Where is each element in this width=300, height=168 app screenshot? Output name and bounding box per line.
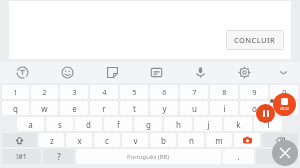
button[interactable]: Settings bbox=[222, 62, 266, 83]
staticText: 3 bbox=[72, 87, 77, 97]
staticText: a bbox=[28, 119, 33, 130]
button[interactable]: Expand toolbar bbox=[266, 62, 300, 83]
button[interactable]: 7 bbox=[180, 85, 208, 99]
button[interactable]: d bbox=[75, 117, 102, 131]
staticText: 8 bbox=[222, 87, 227, 97]
button[interactable]: j bbox=[194, 117, 222, 131]
button[interactable]: 1 bbox=[2, 85, 29, 99]
staticText: i bbox=[223, 103, 226, 114]
button[interactable]: 6 bbox=[150, 85, 178, 99]
button[interactable]: p bbox=[270, 101, 298, 115]
button[interactable]: c bbox=[94, 133, 120, 147]
button[interactable]: Backspace bbox=[262, 133, 298, 147]
button[interactable]: Close bbox=[272, 140, 298, 166]
button[interactable]: h bbox=[164, 117, 192, 131]
button[interactable]: v bbox=[122, 133, 148, 147]
button[interactable]: s bbox=[46, 117, 73, 131]
button[interactable]: f bbox=[104, 117, 132, 131]
staticText: !#1 bbox=[16, 152, 27, 162]
staticText: j bbox=[207, 119, 210, 130]
button[interactable]: 9 bbox=[240, 85, 268, 99]
staticText: o bbox=[252, 103, 257, 114]
staticText: CONCLUIR bbox=[234, 35, 276, 45]
staticText: r bbox=[102, 103, 106, 114]
staticText: b bbox=[161, 135, 166, 146]
staticText: k bbox=[236, 119, 241, 130]
staticText: x bbox=[77, 135, 82, 146]
staticText: f bbox=[117, 119, 120, 130]
button[interactable]: 2 bbox=[31, 85, 58, 99]
staticText: w bbox=[41, 103, 48, 114]
button[interactable]: t bbox=[120, 101, 148, 115]
button[interactable]: z bbox=[39, 133, 64, 147]
button[interactable]: ? bbox=[43, 149, 74, 164]
staticText: q bbox=[13, 103, 18, 114]
staticText: h bbox=[176, 119, 181, 130]
button[interactable]: Shift bbox=[2, 133, 37, 147]
button[interactable]: n bbox=[178, 133, 204, 147]
button[interactable]: Voice input bbox=[178, 62, 222, 83]
staticText: 2 bbox=[42, 87, 47, 97]
button[interactable]: Português (BR) bbox=[76, 149, 221, 164]
button[interactable]: w bbox=[31, 101, 58, 115]
button[interactable]: Voice typing toggle bbox=[0, 62, 45, 83]
staticText: 7 bbox=[192, 87, 197, 97]
staticText: z bbox=[50, 135, 54, 146]
button[interactable]: Emoji bbox=[45, 62, 90, 83]
button[interactable]: q bbox=[2, 101, 29, 115]
button[interactable]: 0 bbox=[270, 85, 298, 99]
button[interactable]: l bbox=[254, 117, 282, 131]
staticText: Português (BR) bbox=[127, 153, 170, 161]
button[interactable]: x bbox=[66, 133, 92, 147]
staticText: 9 bbox=[252, 87, 257, 97]
button[interactable]: . bbox=[223, 149, 254, 164]
staticText: . bbox=[237, 151, 240, 162]
staticText: y bbox=[162, 103, 167, 114]
staticText: 0 bbox=[282, 87, 287, 97]
staticText: n bbox=[189, 135, 194, 146]
staticText: t bbox=[133, 103, 136, 114]
button[interactable]: 3 bbox=[60, 85, 88, 99]
staticText: 5 bbox=[132, 87, 137, 97]
staticText: p bbox=[282, 103, 287, 114]
staticText: 4 bbox=[102, 87, 107, 97]
button[interactable]: 4 bbox=[90, 85, 118, 99]
staticText: g bbox=[146, 119, 151, 130]
button[interactable]: g bbox=[134, 117, 162, 131]
button[interactable]: Stickers bbox=[90, 62, 134, 83]
button[interactable]: CONCLUIR bbox=[226, 30, 284, 50]
button[interactable]: Stop recording bbox=[273, 93, 296, 116]
button[interactable]: o bbox=[240, 101, 268, 115]
staticText: ? bbox=[57, 151, 61, 162]
button[interactable]: !#1 bbox=[2, 149, 41, 164]
staticText: l bbox=[267, 119, 270, 130]
button[interactable]: Clipboard bbox=[134, 62, 178, 83]
staticText: v bbox=[133, 135, 138, 146]
button[interactable]: r bbox=[90, 101, 118, 115]
button[interactable]: u bbox=[180, 101, 208, 115]
button[interactable]: 8 bbox=[210, 85, 238, 99]
staticText: 1 bbox=[13, 87, 18, 97]
staticText: d bbox=[86, 119, 91, 130]
button[interactable]: e bbox=[60, 101, 88, 115]
button[interactable]: y bbox=[150, 101, 178, 115]
button[interactable]: k bbox=[224, 117, 252, 131]
staticText: c bbox=[105, 135, 109, 146]
staticText: e bbox=[72, 103, 77, 114]
staticText: 6 bbox=[162, 87, 167, 97]
button[interactable]: 5 bbox=[120, 85, 148, 99]
button[interactable]: m bbox=[206, 133, 232, 147]
staticText: u bbox=[192, 103, 197, 114]
button[interactable]: b bbox=[150, 133, 176, 147]
staticText: s bbox=[58, 119, 62, 130]
button[interactable]: Enter bbox=[256, 149, 298, 164]
button[interactable]: i bbox=[210, 101, 238, 115]
button[interactable]: Pause recording bbox=[256, 104, 275, 123]
staticText: 00:20 bbox=[280, 106, 289, 111]
button[interactable]: Camera bbox=[234, 133, 260, 147]
button[interactable]: a bbox=[17, 117, 44, 131]
staticText: m bbox=[215, 135, 223, 146]
